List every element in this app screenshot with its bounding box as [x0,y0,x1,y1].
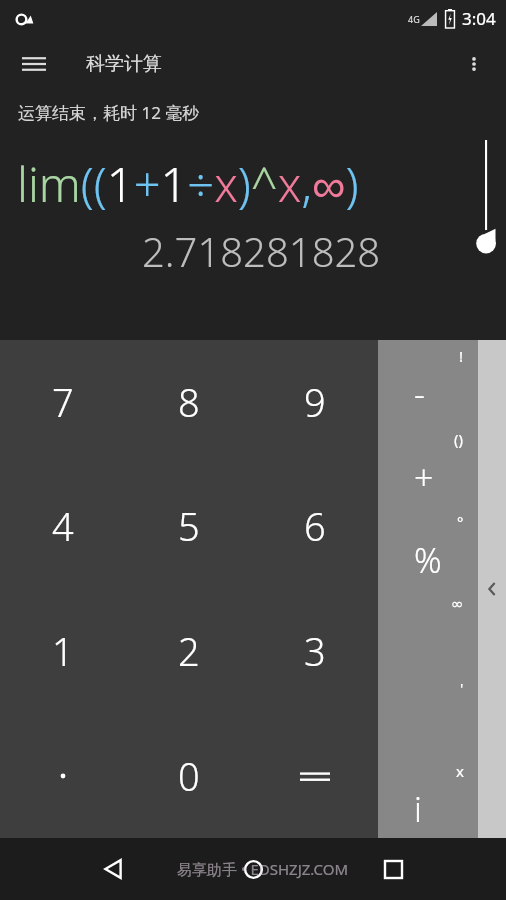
staticText: () [454,429,464,449]
button[interactable]: x [378,755,478,838]
button[interactable]: 8 [126,340,252,464]
staticText: 运算结束，耗时 12 毫秒 [18,101,200,124]
staticText: 5 [178,500,200,552]
staticText: 2 [178,625,200,677]
button[interactable]: 1 [0,588,126,713]
staticText: 科学计算 [86,52,162,76]
staticText: 7 [52,376,74,428]
button[interactable]: 3 [252,588,378,713]
button[interactable]: 0 [126,713,252,838]
staticText: 1 [52,625,74,677]
staticText: 3:04 [462,7,496,30]
button[interactable] [0,713,126,838]
staticText: ° [457,512,464,532]
staticText: ! [459,346,464,366]
button[interactable]: 6 [252,464,378,588]
staticText: 8 [178,376,200,428]
staticText: 0 [178,750,200,802]
button[interactable]: More options [450,40,498,88]
button[interactable]: 2 [126,588,252,713]
button[interactable]: Menu [10,40,58,88]
button[interactable]: ∞ [378,589,478,672]
button[interactable]: Open panel [478,340,506,838]
button[interactable]: 9 [252,340,378,464]
staticText: + [414,454,434,500]
button[interactable]: 5 [126,464,252,588]
staticText: % [414,537,442,583]
button[interactable]: 7 [0,340,126,464]
button[interactable] [252,713,378,838]
staticText: 3 [304,625,326,677]
button[interactable]: () [378,423,478,506]
button[interactable]: Home [226,842,280,896]
staticText: x [456,761,464,781]
button[interactable]: ° [378,506,478,589]
button[interactable]: Back [86,842,140,896]
staticText: 9 [304,376,326,428]
button[interactable]: Recents [366,842,420,896]
staticText: 易享助手 • EDSHZJZ.COM [177,859,349,879]
staticText: ∞ [451,595,464,612]
button[interactable]: ! [378,340,478,423]
staticText: - [414,371,425,417]
staticText: lim((1+1÷x)^x,∞) [17,152,359,216]
staticText: ' [460,678,464,698]
staticText: 4 [52,500,74,552]
staticText: i [414,786,422,832]
staticText: 2.718281828 [142,224,381,278]
button[interactable]: 4 [0,464,126,588]
staticText: 4G [408,13,420,25]
staticText: 6 [304,500,326,552]
